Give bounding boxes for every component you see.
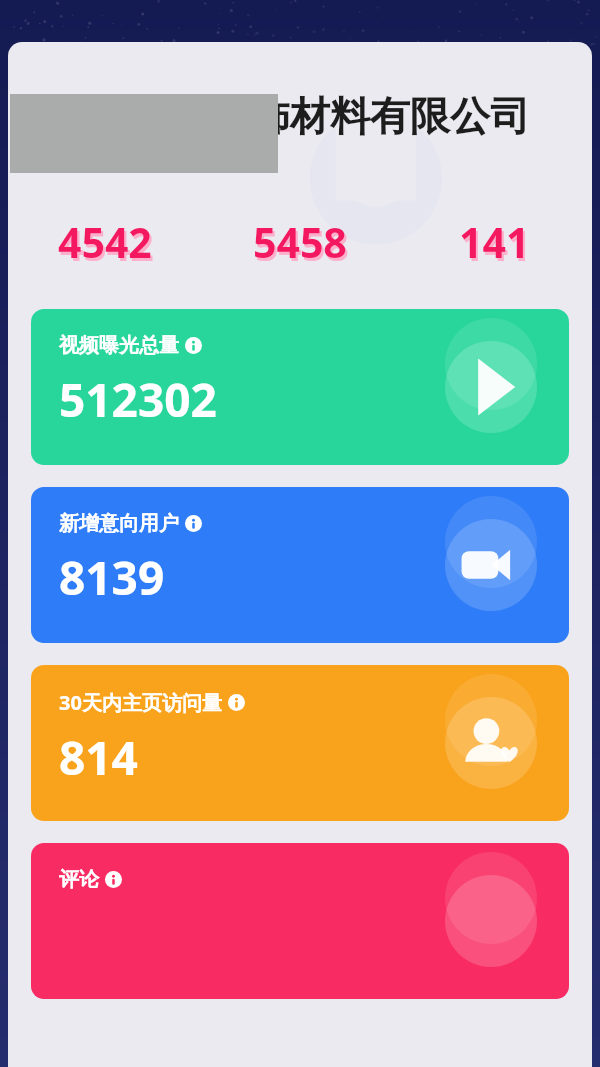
staticText: 512302 (59, 368, 217, 431)
staticText: ＿＿＿＿＿装饰材料有限公司 (10, 91, 590, 141)
staticText: 评论 (59, 867, 99, 892)
staticText: 814 (59, 726, 138, 789)
button[interactable]: 4542 (8, 214, 202, 262)
staticText: 4542 (58, 214, 152, 262)
staticText: 141 (459, 214, 530, 262)
button[interactable]: 5458 (202, 214, 397, 262)
staticText: 8139 (59, 546, 165, 609)
button[interactable]: 141 (397, 214, 592, 262)
button[interactable]: Home visits (31, 665, 569, 821)
staticText: 新增意向用户 (59, 511, 179, 536)
staticText: 5458 (253, 214, 347, 262)
staticText: 30天内主页访问量 (59, 689, 222, 716)
staticText: 5458 (255, 217, 349, 265)
staticText: 视频曝光总量 (59, 333, 179, 358)
staticText: 4542 (60, 217, 154, 265)
button[interactable]: Comments (31, 843, 569, 999)
staticText: 141 (461, 217, 532, 265)
button[interactable]: Video exposure (31, 309, 569, 465)
button[interactable]: New users (31, 487, 569, 643)
